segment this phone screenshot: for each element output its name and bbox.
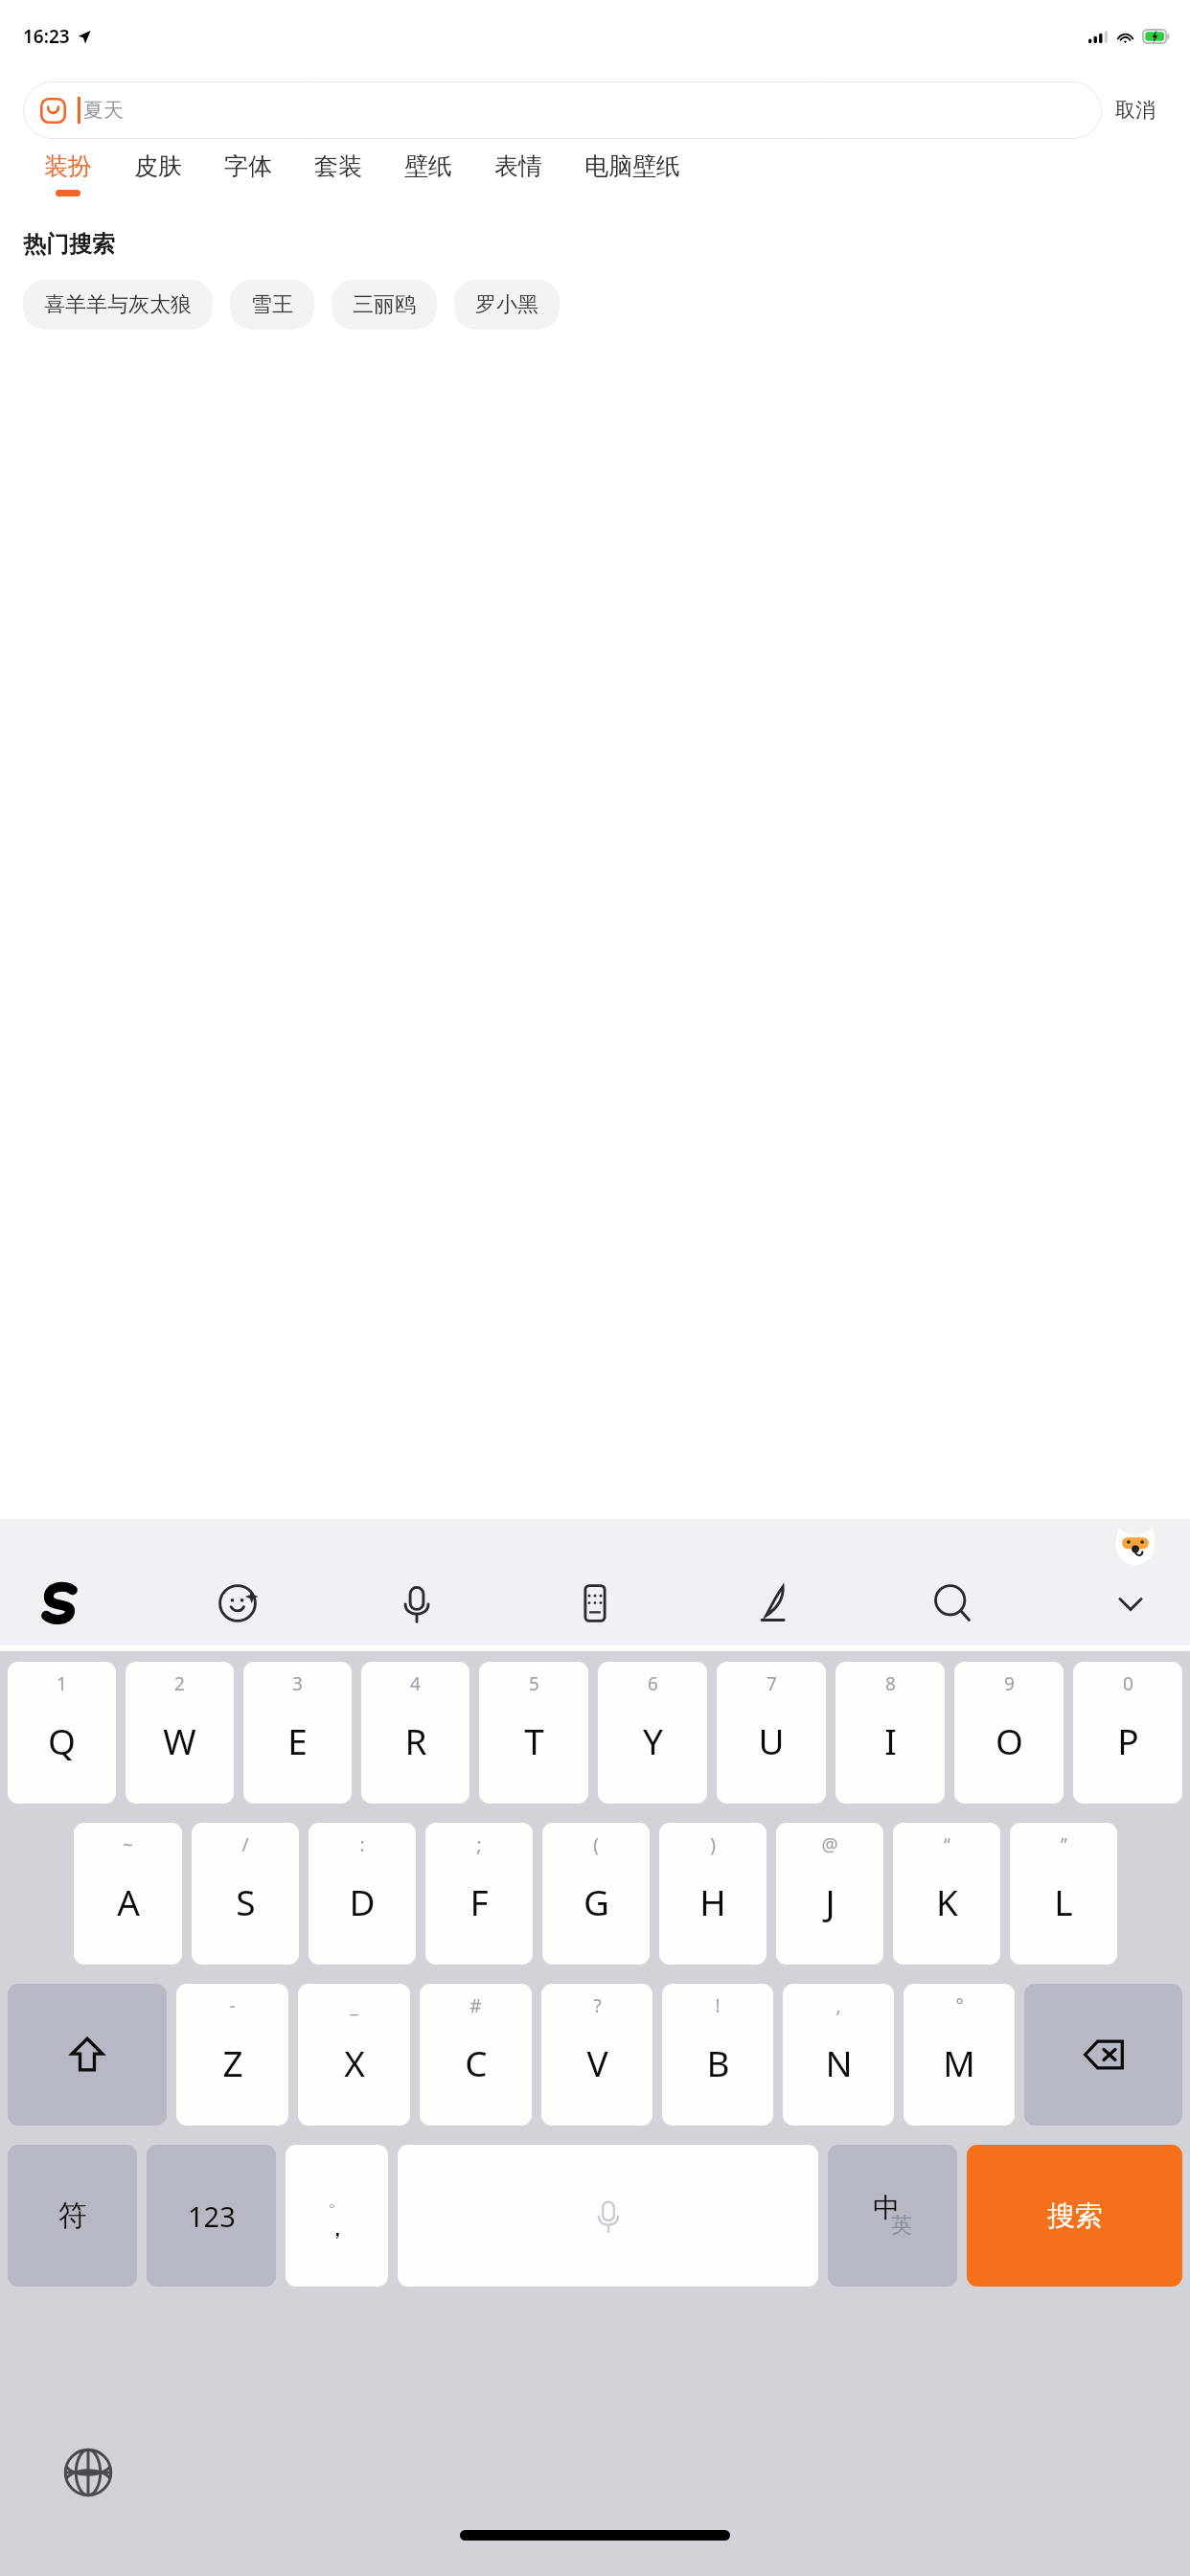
button[interactable]: 123 bbox=[147, 2145, 276, 2287]
staticText: V bbox=[586, 2038, 608, 2086]
staticText: 2 bbox=[174, 1671, 185, 1696]
staticText: ， bbox=[325, 2212, 350, 2243]
button[interactable]: 0 bbox=[1073, 1662, 1182, 1804]
button[interactable]: 符 bbox=[8, 2145, 137, 2287]
button[interactable]: 3 bbox=[243, 1662, 352, 1804]
staticText: 1 bbox=[57, 1671, 67, 1696]
button[interactable]: Shift bbox=[8, 1984, 167, 2126]
button[interactable]: / bbox=[192, 1823, 299, 1965]
staticText: 4 bbox=[410, 1671, 421, 1696]
button[interactable]: Keyboard layout bbox=[564, 1573, 626, 1634]
staticText: 搜索 bbox=[1047, 2198, 1103, 2234]
staticText: 取消 bbox=[1115, 98, 1156, 123]
staticText: W bbox=[163, 1716, 196, 1764]
button[interactable]: Search bbox=[922, 1573, 983, 1634]
staticText: A bbox=[117, 1877, 140, 1925]
staticText: N bbox=[825, 2038, 853, 2086]
staticText: 8 bbox=[885, 1671, 896, 1696]
staticText: # bbox=[469, 1993, 482, 2018]
button[interactable]: ? bbox=[541, 1984, 652, 2126]
button[interactable]: ~ bbox=[74, 1823, 182, 1965]
staticText: _ bbox=[350, 1993, 358, 2018]
staticText: ~ bbox=[123, 1832, 133, 1857]
button[interactable]: “ bbox=[893, 1823, 1000, 1965]
button[interactable]: 罗小黑 bbox=[454, 280, 560, 330]
button[interactable]: Switch language bbox=[59, 2444, 117, 2501]
button[interactable]: 5 bbox=[479, 1662, 588, 1804]
button[interactable]: 取消 bbox=[1102, 90, 1169, 130]
staticText: 装扮 bbox=[44, 151, 92, 181]
staticText: U bbox=[758, 1716, 785, 1764]
button[interactable]: 1 bbox=[8, 1662, 116, 1804]
button[interactable]: ! bbox=[662, 1984, 773, 2126]
staticText: 5 bbox=[529, 1671, 539, 1696]
staticText: 三丽鸥 bbox=[353, 291, 416, 318]
staticText: 0 bbox=[1123, 1671, 1133, 1696]
staticText: 符 bbox=[58, 2197, 87, 2234]
button[interactable]: Chinese English toggle bbox=[828, 2145, 957, 2287]
button[interactable]: 字体 bbox=[203, 148, 293, 190]
button[interactable]: Assistant avatar bbox=[1113, 1523, 1157, 1567]
button[interactable]: Space, voice input bbox=[398, 2145, 818, 2287]
button[interactable]: , bbox=[783, 1984, 894, 2126]
staticText: 罗小黑 bbox=[475, 291, 538, 318]
staticText: : bbox=[359, 1832, 365, 1857]
staticText: 热门搜索 bbox=[23, 230, 115, 259]
button[interactable]: 壁纸 bbox=[383, 148, 473, 190]
button[interactable]: 喜羊羊与灰太狼 bbox=[23, 280, 213, 330]
button[interactable]: Voice input bbox=[386, 1573, 447, 1634]
button[interactable]: Sogou input bbox=[29, 1573, 90, 1634]
staticText: ? bbox=[593, 1993, 602, 2018]
button[interactable]: _ bbox=[298, 1984, 410, 2126]
staticText: K bbox=[936, 1877, 958, 1925]
staticText: P bbox=[1117, 1716, 1139, 1764]
staticText: R bbox=[404, 1716, 427, 1764]
staticText: Q bbox=[48, 1716, 76, 1764]
staticText: L bbox=[1054, 1877, 1073, 1925]
staticText: 7 bbox=[767, 1671, 777, 1696]
button[interactable]: ; bbox=[425, 1823, 533, 1965]
button[interactable]: 搜索 bbox=[967, 2145, 1182, 2287]
button[interactable]: 三丽鸥 bbox=[332, 280, 437, 330]
staticText: 表情 bbox=[494, 151, 542, 181]
staticText: ° bbox=[955, 1993, 964, 2018]
button[interactable]: 2 bbox=[126, 1662, 234, 1804]
button[interactable]: : bbox=[309, 1823, 416, 1965]
button[interactable]: 皮肤 bbox=[113, 148, 203, 190]
button[interactable]: Handwriting bbox=[743, 1573, 804, 1634]
button[interactable]: 6 bbox=[598, 1662, 707, 1804]
button[interactable]: 套装 bbox=[293, 148, 383, 190]
staticText: S bbox=[236, 1877, 256, 1925]
staticText: I bbox=[884, 1716, 897, 1764]
button[interactable]: # bbox=[420, 1984, 532, 2126]
staticText: Y bbox=[643, 1716, 663, 1764]
staticText: 。 bbox=[328, 2188, 347, 2212]
button[interactable]: 电脑壁纸 bbox=[563, 148, 701, 190]
button[interactable]: 表情 bbox=[473, 148, 563, 190]
staticText: - bbox=[229, 1993, 236, 2018]
button[interactable]: ) bbox=[659, 1823, 767, 1965]
button[interactable]: 装扮 bbox=[23, 148, 113, 196]
staticText: J bbox=[825, 1877, 835, 1925]
staticText: 3 bbox=[292, 1671, 303, 1696]
button[interactable]: 夏天 bbox=[23, 81, 1102, 139]
button[interactable]: 7 bbox=[717, 1662, 826, 1804]
button[interactable]: Emoji bbox=[207, 1573, 268, 1634]
button[interactable]: 雪王 bbox=[230, 280, 314, 330]
button[interactable]: 。 bbox=[286, 2145, 388, 2287]
button[interactable]: ° bbox=[904, 1984, 1015, 2126]
staticText: ) bbox=[710, 1832, 716, 1857]
button[interactable]: 4 bbox=[361, 1662, 469, 1804]
staticText: T bbox=[524, 1716, 544, 1764]
button[interactable]: Backspace bbox=[1024, 1984, 1182, 2126]
button[interactable]: ” bbox=[1010, 1823, 1117, 1965]
staticText: 皮肤 bbox=[134, 151, 182, 181]
button[interactable]: 9 bbox=[954, 1662, 1064, 1804]
button[interactable]: ( bbox=[542, 1823, 650, 1965]
button[interactable]: Collapse keyboard bbox=[1100, 1573, 1161, 1634]
button[interactable]: - bbox=[176, 1984, 288, 2126]
staticText: X bbox=[344, 2038, 365, 2086]
button[interactable]: @ bbox=[776, 1823, 883, 1965]
staticText: @ bbox=[821, 1832, 838, 1857]
button[interactable]: 8 bbox=[835, 1662, 945, 1804]
